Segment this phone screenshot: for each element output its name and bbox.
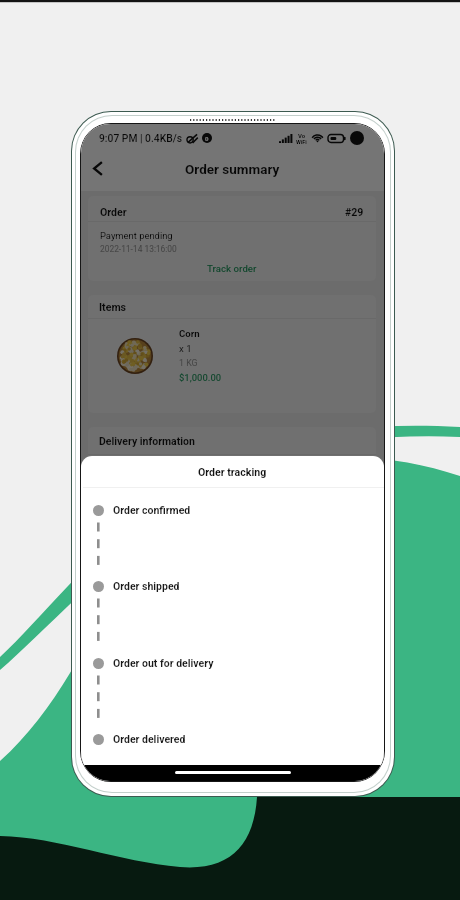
staticText: Order confirmed	[113, 504, 191, 516]
button[interactable]: Order out for delivery	[81, 654, 384, 671]
staticText: 1 KG	[179, 358, 198, 368]
staticText: Order tracking	[198, 466, 267, 478]
button[interactable]: Corn	[117, 326, 376, 385]
staticText: Payment pending	[100, 230, 173, 241]
button[interactable]: Back	[81, 152, 114, 185]
staticText: Order shipped	[113, 580, 180, 592]
staticText: 9:07 PM | 0.4KB/s	[99, 132, 182, 144]
staticText: Items	[99, 301, 127, 313]
staticText: 0	[205, 135, 209, 142]
staticText: Track order	[207, 263, 257, 274]
button[interactable]: Order delivered	[81, 730, 384, 747]
staticText: WiFi	[296, 139, 307, 145]
staticText: Order	[100, 206, 127, 218]
staticText: #29	[345, 206, 364, 218]
staticText: Order out for delivery	[113, 657, 214, 669]
button[interactable]: Order confirmed	[81, 501, 384, 518]
staticText: Order delivered	[113, 733, 186, 745]
button[interactable]: Track order	[88, 256, 376, 280]
staticText: Vo	[298, 132, 306, 139]
button[interactable]: Order shipped	[81, 577, 384, 594]
staticText: Order summary	[185, 161, 280, 177]
staticText: Corn	[179, 328, 200, 339]
staticText: 2022-11-14 13:16:00	[100, 244, 177, 254]
staticText: Delivery information	[99, 435, 195, 447]
staticText: x 1	[179, 343, 192, 354]
staticText: $1,000.00	[179, 372, 222, 383]
